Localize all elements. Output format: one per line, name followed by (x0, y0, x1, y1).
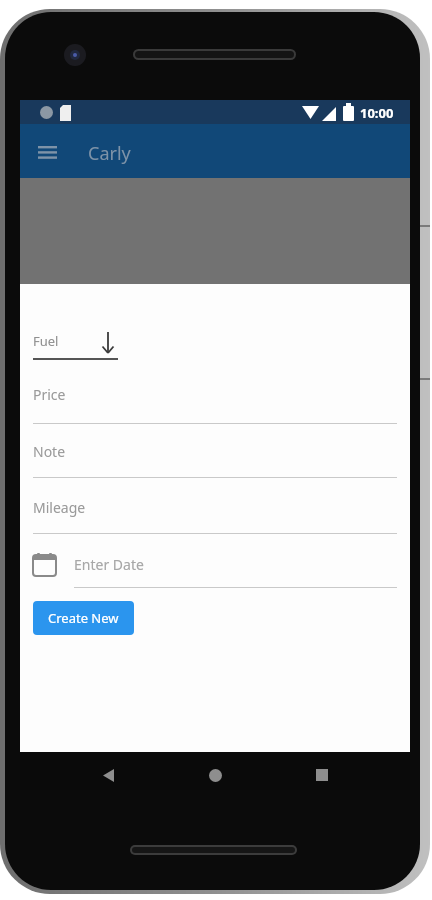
staticText: Carly (88, 141, 131, 166)
button[interactable]: Create New (33, 601, 134, 635)
staticText: Enter Date (74, 555, 144, 574)
button[interactable] (300, 759, 344, 791)
staticText: Mileage (33, 498, 86, 517)
staticText: 10:00 (360, 104, 394, 122)
button[interactable]: Fuel (33, 332, 123, 362)
button[interactable] (86, 759, 130, 791)
button[interactable] (193, 759, 237, 791)
staticText: Note (33, 442, 66, 461)
staticText: Fuel (33, 332, 59, 350)
button[interactable]: Enter Date (33, 550, 233, 578)
button[interactable] (28, 142, 66, 162)
staticText: Create New (48, 609, 119, 627)
staticText: Price (33, 385, 66, 404)
